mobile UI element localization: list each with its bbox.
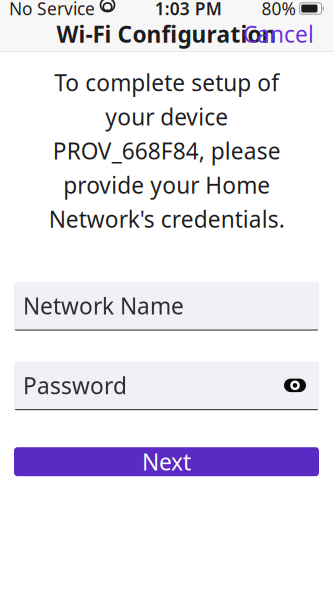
staticText: Next xyxy=(142,447,191,477)
staticText: Cancel xyxy=(243,19,314,49)
button[interactable]: Show password xyxy=(280,372,310,398)
staticText: Password xyxy=(23,370,127,400)
staticText: 1:03 PM xyxy=(155,0,222,20)
staticText: Network Name xyxy=(23,291,184,321)
staticText: 80% xyxy=(262,0,296,20)
staticText: No Service xyxy=(9,0,95,20)
button[interactable]: Cancel xyxy=(237,13,320,55)
staticText: To complete setup of your device PROV_66… xyxy=(48,67,284,234)
staticText: Wi-Fi Configuration xyxy=(56,19,276,49)
button[interactable]: Next xyxy=(14,447,319,476)
